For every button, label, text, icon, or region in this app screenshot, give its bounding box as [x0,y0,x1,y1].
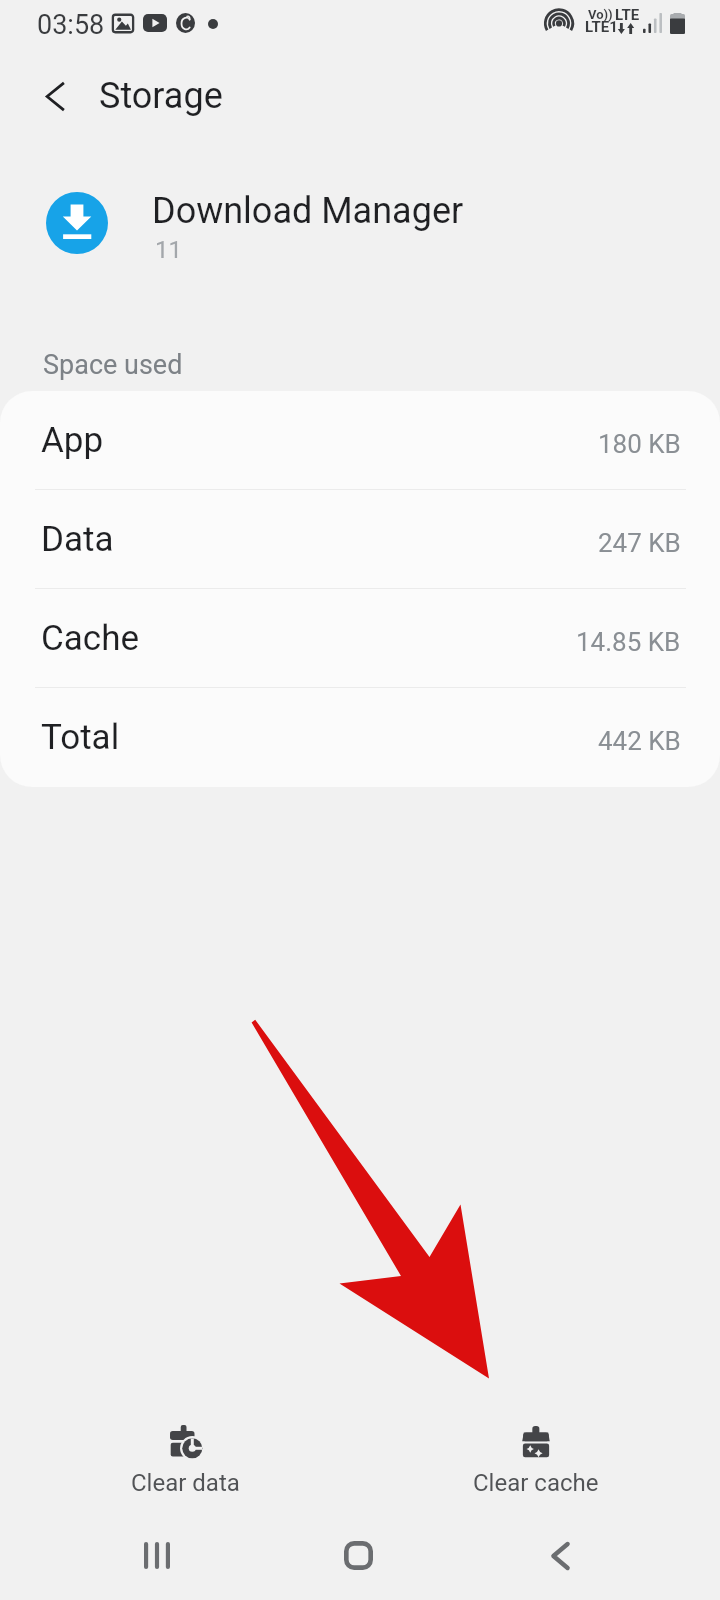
staticText: Storage [99,75,223,117]
staticText: 442 KB [598,726,681,756]
staticText: Cache [41,618,139,659]
staticText: Clear cache [473,1469,599,1497]
staticText: Space used [43,349,183,381]
button[interactable]: Clear data [65,1401,305,1511]
button[interactable]: Recent apps [77,1508,237,1600]
staticText: Clear data [131,1469,240,1497]
staticText: LTE1 [585,18,618,36]
staticText: 180 KB [598,429,681,459]
staticText: Data [41,519,114,560]
button[interactable]: Total [0,688,720,787]
button[interactable]: App [0,391,720,490]
staticText: Vo)) [588,7,613,22]
button[interactable]: Back [480,1508,640,1600]
staticText: Download Manager [152,190,464,232]
staticText: Total [41,717,120,758]
button[interactable]: Data [0,490,720,589]
staticText: LTE [615,6,640,24]
button[interactable]: Clear cache [416,1401,656,1511]
button[interactable]: Navigate up [21,74,89,118]
button[interactable]: Cache [0,589,720,688]
staticText: 14.85 KB [576,627,681,657]
staticText: 03:58 [37,9,105,41]
button[interactable]: Home [278,1508,438,1600]
staticText: 11 [155,236,182,264]
staticText: App [41,420,104,461]
staticText: 247 KB [598,528,681,558]
